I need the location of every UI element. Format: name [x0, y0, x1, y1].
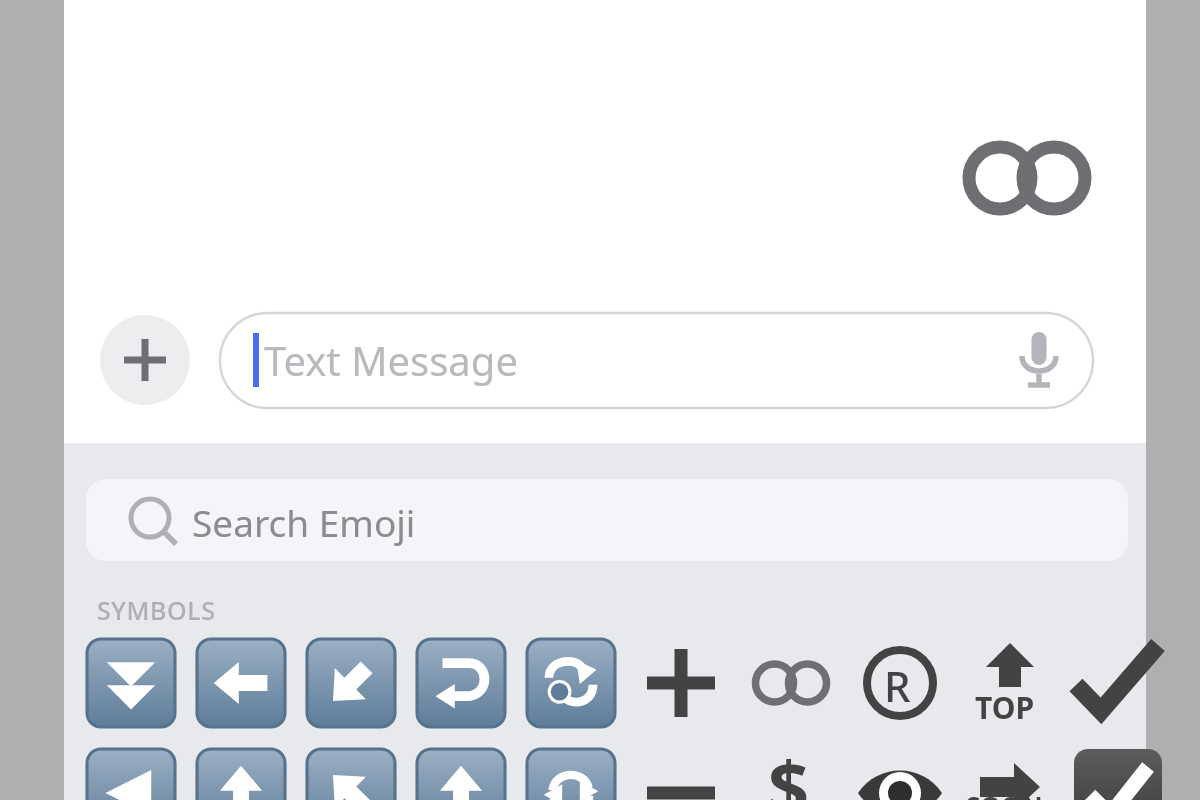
staticText: SOON	[966, 788, 1043, 800]
staticText: SYMBOLS	[97, 593, 216, 627]
staticText: Text Message	[264, 333, 518, 387]
button[interactable]	[86, 479, 1128, 561]
staticText: R	[884, 657, 911, 714]
button[interactable]	[220, 313, 1093, 408]
staticText: $	[768, 737, 810, 800]
staticText: TOP	[975, 687, 1035, 728]
button[interactable]: Dictate message	[1005, 320, 1083, 400]
button[interactable]: Add attachment	[100, 315, 190, 405]
staticText: Search Emoji	[192, 497, 416, 547]
